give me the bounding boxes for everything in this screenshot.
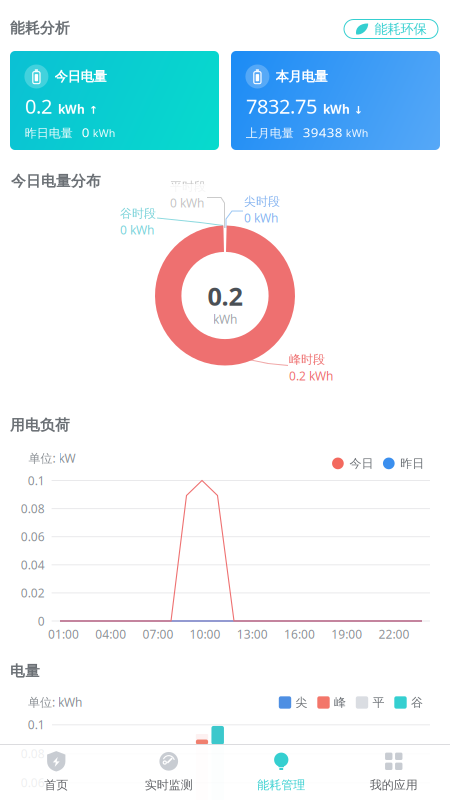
staticText: 能耗分析 (10, 19, 70, 37)
staticText: 0.06 (21, 774, 45, 790)
staticText: kWh (213, 311, 237, 327)
staticText: 今日 (350, 456, 374, 471)
staticText: ↑ (85, 104, 98, 116)
staticText: 昨日 (400, 456, 424, 471)
staticText: 0 (38, 613, 45, 629)
staticText: 平 (372, 695, 384, 710)
staticText: 峰 (334, 695, 346, 710)
staticText: 电量 (10, 662, 40, 680)
staticText: 尖时段 (244, 194, 280, 209)
staticText: kWh (90, 126, 116, 140)
staticText: 39438 (294, 123, 343, 141)
staticText: 0.06 (21, 529, 45, 545)
staticText: ↓ (350, 104, 363, 116)
staticText: 7832.75 (246, 93, 317, 119)
staticText: 本月电量 (276, 68, 328, 85)
staticText: 0.1 (28, 472, 45, 488)
staticText: 0.04 (21, 557, 45, 573)
staticText: 能耗环保 (374, 21, 426, 37)
staticText: 谷时段 (120, 206, 156, 221)
staticText: 0.2 (207, 279, 242, 313)
staticText: 0 kWh (244, 210, 278, 226)
staticText: 10:00 (190, 626, 221, 642)
staticText: 能耗管理 (257, 778, 305, 792)
button[interactable]: 实时监测 (112, 744, 225, 800)
staticText: kWh (317, 101, 350, 117)
staticText: 平时段 (170, 179, 206, 194)
staticText: 16:00 (284, 626, 315, 642)
staticText: kWh (52, 101, 85, 117)
staticText: 实时监测 (145, 778, 193, 792)
staticText: 首页 (44, 778, 68, 792)
staticText: 13:00 (237, 626, 268, 642)
button[interactable]: 能耗环保 (344, 19, 438, 38)
button[interactable]: 首页 (0, 744, 112, 800)
staticText: 今日电量 (55, 68, 107, 85)
staticText: 0 kWh (170, 195, 204, 211)
staticText: 0 (73, 123, 90, 141)
staticText: 今日电量分布 (11, 172, 101, 190)
staticText: 04:00 (95, 626, 126, 642)
staticText: 0.1 (28, 716, 45, 732)
button[interactable]: 我的应用 (337, 744, 450, 800)
staticText: 01:00 (48, 626, 79, 642)
staticText: 尖 (295, 695, 307, 710)
button[interactable]: 能耗管理 (225, 744, 337, 800)
staticText: 0.08 (21, 745, 45, 761)
staticText: 0 kWh (120, 222, 154, 238)
staticText: 0.08 (21, 501, 45, 516)
staticText: 0.02 (21, 585, 45, 601)
staticText: 谷 (411, 695, 423, 710)
staticText: 07:00 (142, 626, 173, 642)
staticText: 19:00 (331, 626, 362, 642)
staticText: 峰时段 (289, 352, 325, 367)
staticText: 单位: kW (28, 450, 75, 466)
staticText: 上月电量 (246, 126, 294, 140)
staticText: kWh (343, 126, 369, 140)
staticText: 我的应用 (370, 778, 418, 792)
staticText: 昨日电量 (25, 126, 73, 140)
staticText: 22:00 (378, 626, 409, 642)
staticText: 0.2 (25, 93, 52, 119)
staticText: 单位: kWh (28, 694, 82, 710)
staticText: 0.2 kWh (289, 368, 333, 384)
staticText: 用电负荷 (10, 416, 70, 434)
